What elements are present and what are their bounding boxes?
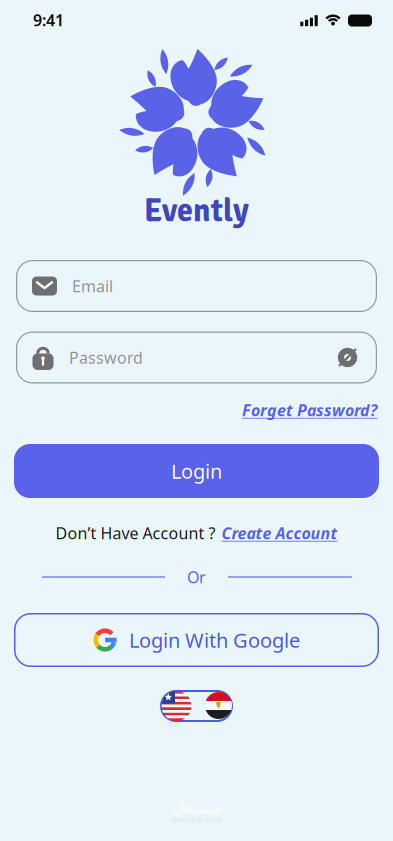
staticText: Forget Password? (242, 399, 377, 421)
staticText: Login (171, 458, 222, 484)
button[interactable]: Change language (160, 690, 233, 722)
button[interactable]: Show password (337, 347, 358, 368)
button[interactable]: Login (14, 444, 379, 498)
button[interactable]: Login With Google (14, 613, 379, 667)
staticText: Login With Google (129, 627, 300, 653)
staticText: Or (187, 566, 206, 588)
staticText: Password (69, 347, 143, 368)
staticText: Email (72, 275, 113, 297)
button[interactable]: Forget Password? (242, 399, 377, 421)
staticText: Don’t Have Account ? (55, 522, 215, 544)
staticText: Evently (144, 191, 249, 231)
staticText: مستقل (172, 801, 221, 816)
button[interactable]: Password (16, 331, 377, 383)
staticText: Create Account (221, 522, 337, 544)
button[interactable]: Email (16, 260, 377, 312)
staticText: mostaql.com (171, 814, 222, 825)
staticText: 9:41 (33, 9, 64, 31)
button[interactable]: Create Account (221, 522, 337, 544)
